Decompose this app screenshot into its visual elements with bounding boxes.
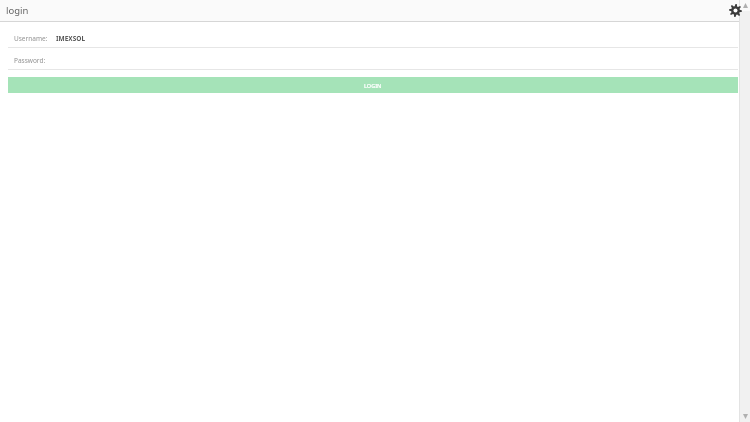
button[interactable]: Scroll up: [740, 0, 750, 11]
staticText: Password:: [14, 56, 46, 65]
button[interactable]: Settings: [725, 0, 746, 21]
staticText: login: [6, 4, 29, 17]
staticText: IMEXSOL: [56, 34, 86, 43]
staticText: LOGIN: [364, 82, 382, 89]
staticText: Username:: [14, 34, 48, 43]
button[interactable]: Password:: [0, 52, 740, 69]
button[interactable]: login: [6, 4, 29, 17]
button[interactable]: Username:: [0, 30, 740, 47]
button[interactable]: LOGIN: [8, 77, 738, 93]
button[interactable]: Scroll down: [740, 411, 750, 422]
